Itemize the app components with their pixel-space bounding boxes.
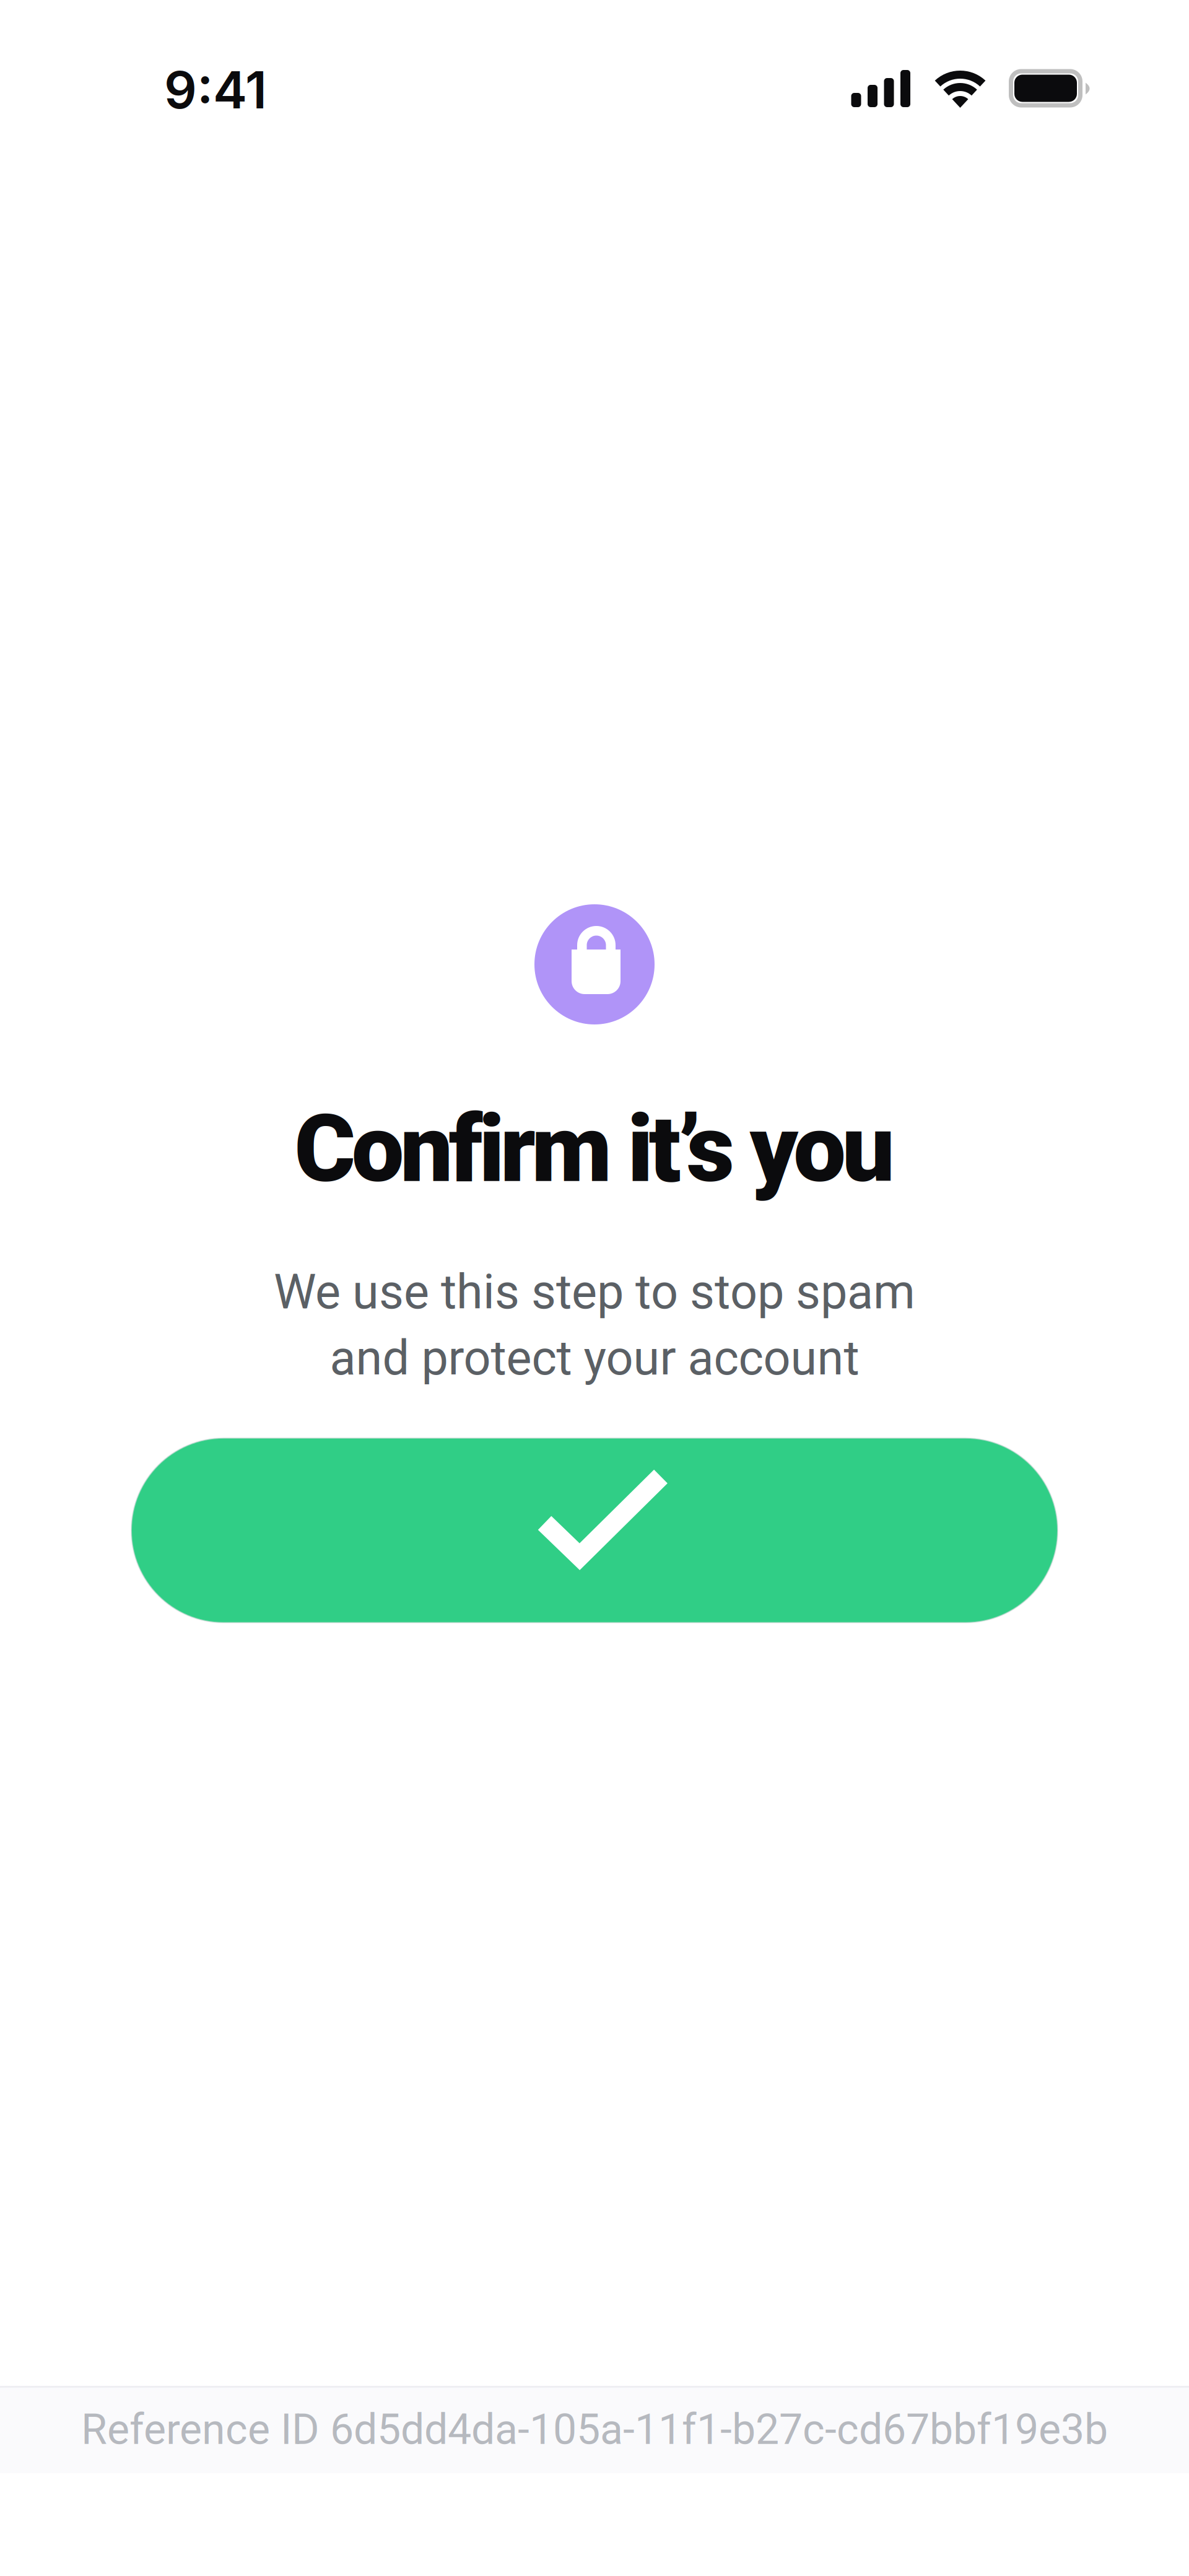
staticText: We use this step to stop spam <box>274 1264 915 1320</box>
staticText: and protect your account <box>330 1330 859 1386</box>
button[interactable]: Confirm you are human <box>131 1438 1058 1623</box>
staticText: 9:41 <box>164 59 267 121</box>
staticText: Confirm it’s you <box>294 1094 895 1204</box>
staticText: Reference ID 6d5dd4da-105a-11f1-b27c-cd6… <box>81 2405 1108 2454</box>
